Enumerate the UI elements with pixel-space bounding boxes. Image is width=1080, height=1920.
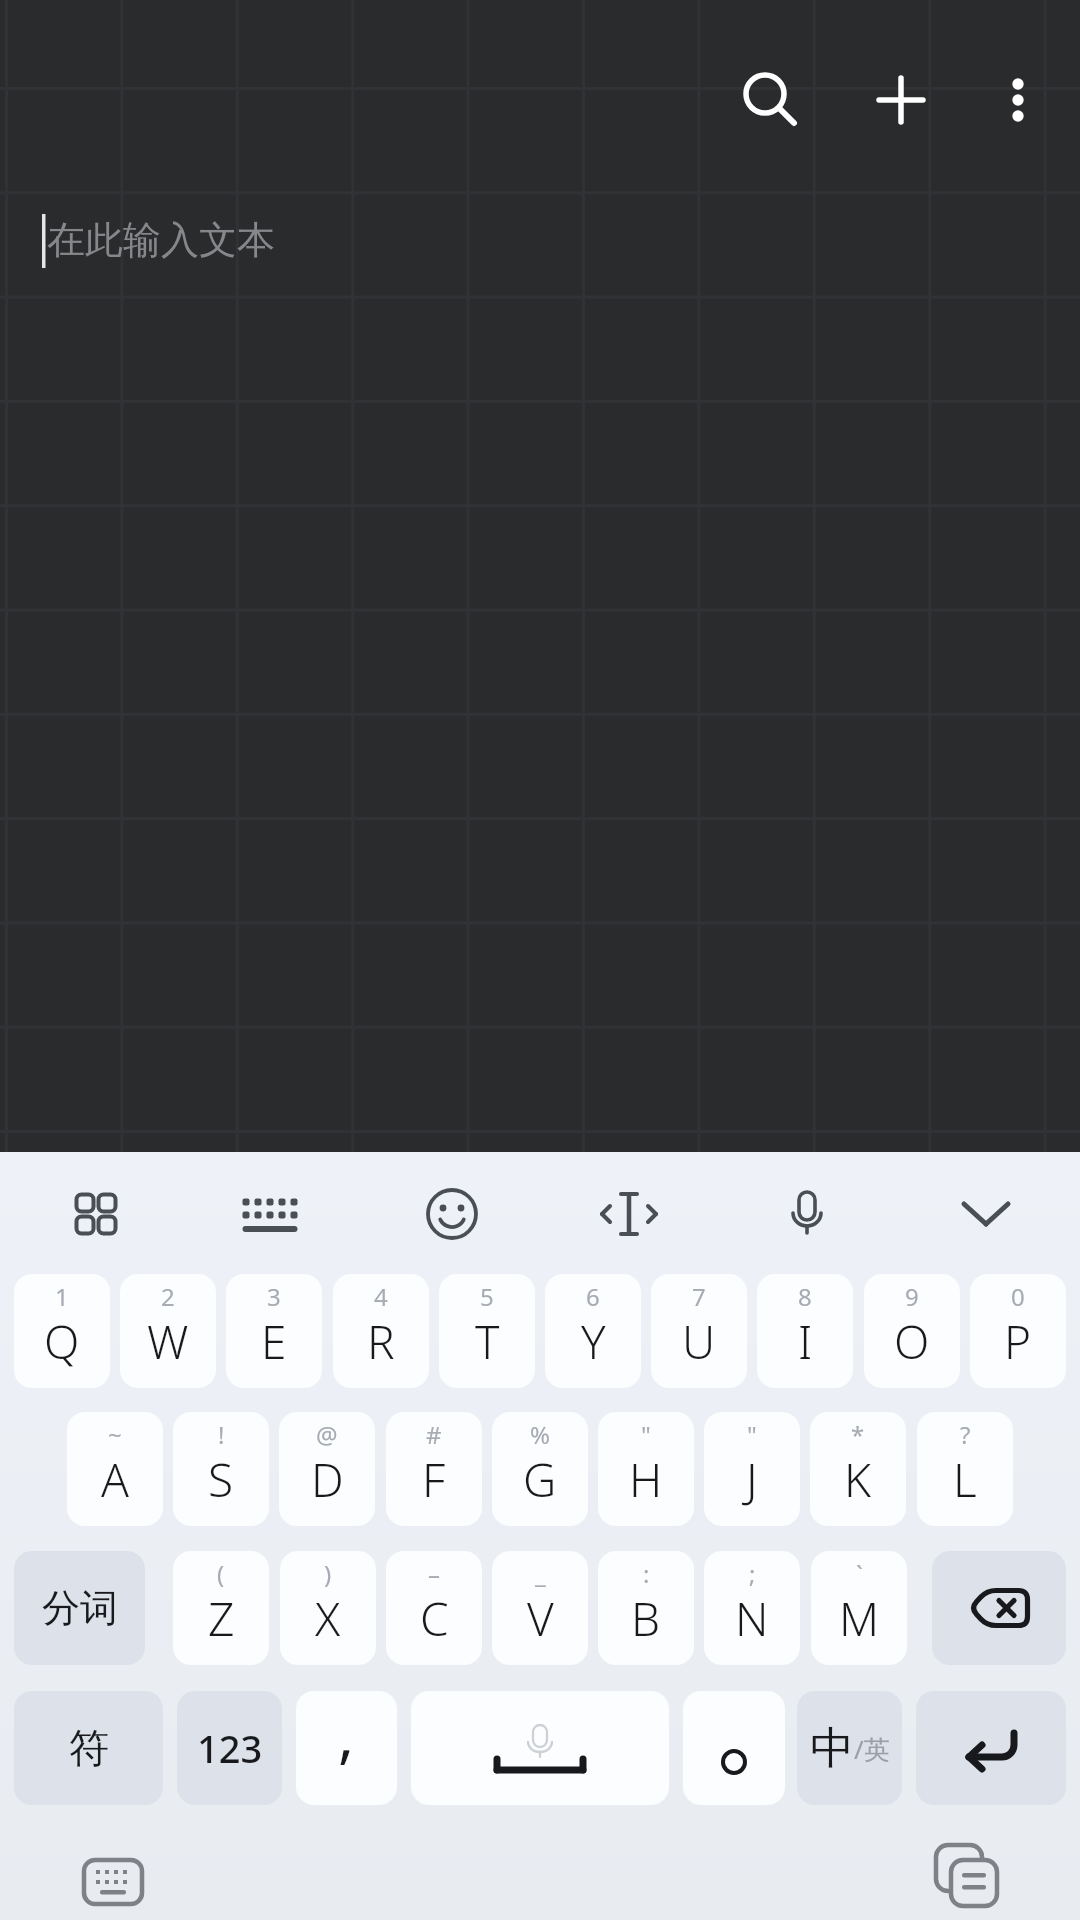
button[interactable]: 7 [651,1274,747,1388]
button[interactable]: 0 [970,1274,1066,1388]
staticText: " [641,1418,651,1451]
staticText: P [1004,1310,1032,1373]
button[interactable] [941,1170,1029,1258]
button[interactable]: ( [173,1551,269,1665]
button[interactable]: , [296,1691,397,1805]
staticText: O [894,1310,930,1373]
button[interactable]: 2 [120,1274,216,1388]
button[interactable]: 123 [177,1691,282,1805]
staticText: 4 [374,1280,388,1313]
staticText: L [953,1448,977,1511]
staticText: " [747,1418,757,1451]
button[interactable] [226,1170,314,1258]
button[interactable]: – [386,1551,482,1665]
button[interactable] [932,1551,1066,1665]
button[interactable] [683,1691,785,1805]
staticText: , [338,1693,355,1775]
staticText: _ [535,1557,546,1590]
button[interactable]: 5 [439,1274,535,1388]
staticText: U [682,1310,716,1373]
staticText: ? [960,1418,971,1451]
staticText: – [428,1557,440,1590]
button[interactable]: _ [492,1551,588,1665]
staticText: 2 [161,1280,175,1313]
button[interactable] [916,1691,1066,1805]
staticText: ( [217,1557,225,1590]
staticText: % [530,1418,550,1451]
staticText: 8 [798,1280,812,1313]
button[interactable]: " [704,1412,800,1526]
staticText: 123 [197,1722,263,1774]
button[interactable]: ! [173,1412,269,1526]
button[interactable] [923,1835,1011,1920]
button[interactable] [763,1170,851,1258]
staticText: @ [316,1418,338,1451]
staticText: J [746,1448,758,1511]
button[interactable]: # [386,1412,482,1526]
staticText: Z [208,1587,235,1650]
staticText: Y [581,1310,606,1373]
button[interactable] [69,1838,157,1920]
staticText: 符 [69,1723,109,1773]
button[interactable]: % [492,1412,588,1526]
button[interactable]: 分词 [14,1551,145,1665]
staticText: 6 [586,1280,600,1313]
button[interactable]: ~ [67,1412,163,1526]
button[interactable] [857,56,945,144]
button[interactable] [585,1170,673,1258]
staticText: S [208,1448,234,1511]
staticText: K [844,1448,872,1511]
button[interactable]: 中 [797,1691,902,1805]
staticText: 9 [905,1280,919,1313]
button[interactable]: ? [917,1412,1013,1526]
staticText: 1 [55,1280,69,1313]
staticText: A [101,1448,129,1511]
button[interactable]: 9 [864,1274,960,1388]
staticText: W [147,1310,189,1373]
staticText: ! [218,1418,225,1451]
staticText: H [629,1448,663,1511]
button[interactable]: : [598,1551,694,1665]
staticText: E [261,1310,287,1373]
button[interactable]: ; [704,1551,800,1665]
button[interactable]: @ [279,1412,375,1526]
staticText: 5 [480,1280,494,1313]
staticText: 分词 [42,1584,118,1632]
button[interactable] [408,1170,496,1258]
button[interactable] [52,1170,140,1258]
staticText: M [839,1587,880,1650]
button[interactable]: 8 [757,1274,853,1388]
staticText: # [426,1418,442,1451]
staticText: ) [324,1557,332,1590]
staticText: N [735,1587,769,1650]
staticText: R [367,1310,395,1373]
staticText: 在此输入文本 [47,216,275,264]
staticText: C [420,1587,449,1650]
button[interactable]: " [598,1412,694,1526]
staticText: X [315,1587,341,1650]
staticText: Q [44,1310,80,1373]
button[interactable]: ) [280,1551,376,1665]
staticText: 3 [267,1280,281,1313]
button[interactable]: 符 [14,1691,163,1805]
button[interactable] [411,1691,669,1805]
button[interactable]: * [810,1412,906,1526]
staticText: V [527,1587,554,1650]
button[interactable] [722,56,810,144]
staticText: ` [856,1557,863,1590]
button[interactable]: 4 [333,1274,429,1388]
button[interactable]: 1 [14,1274,110,1388]
staticText: 中 [810,1721,854,1776]
button[interactable]: ` [811,1551,907,1665]
staticText: 0 [1011,1280,1025,1313]
staticText: 7 [692,1280,706,1313]
staticText: T [475,1310,500,1373]
staticText: ~ [108,1418,122,1451]
staticText: D [311,1448,344,1511]
button[interactable] [974,56,1062,144]
staticText: I [798,1310,813,1373]
staticText: B [631,1587,661,1650]
button[interactable]: 6 [545,1274,641,1388]
button[interactable]: 3 [226,1274,322,1388]
staticText: * [851,1418,865,1451]
